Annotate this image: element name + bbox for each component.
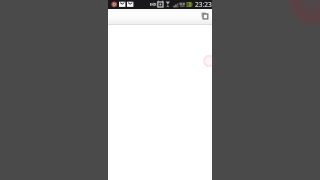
button[interactable]: Copy: [198, 9, 211, 24]
staticText: 23:23: [195, 0, 212, 9]
